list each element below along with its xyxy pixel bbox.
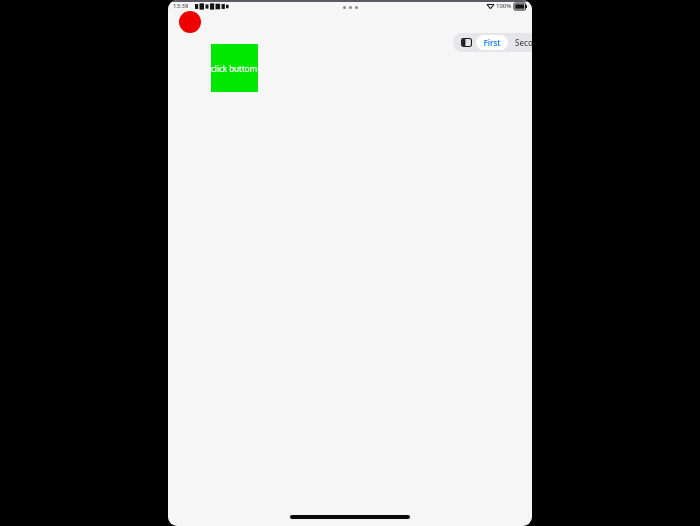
- button[interactable]: Second: [508, 35, 532, 50]
- staticText: First: [483, 37, 501, 48]
- staticText: 100%: [496, 2, 512, 10]
- button[interactable]: First: [476, 35, 508, 50]
- staticText: Second: [515, 37, 532, 48]
- button[interactable]: Red indicator: [179, 11, 201, 33]
- staticText: click buttom: [211, 63, 258, 74]
- button[interactable]: Toggle sidebar: [456, 34, 476, 51]
- button[interactable]: click buttom: [211, 44, 258, 92]
- button[interactable]: Multitasking controls: [339, 4, 362, 11]
- staticText: 13:38: [173, 2, 189, 10]
